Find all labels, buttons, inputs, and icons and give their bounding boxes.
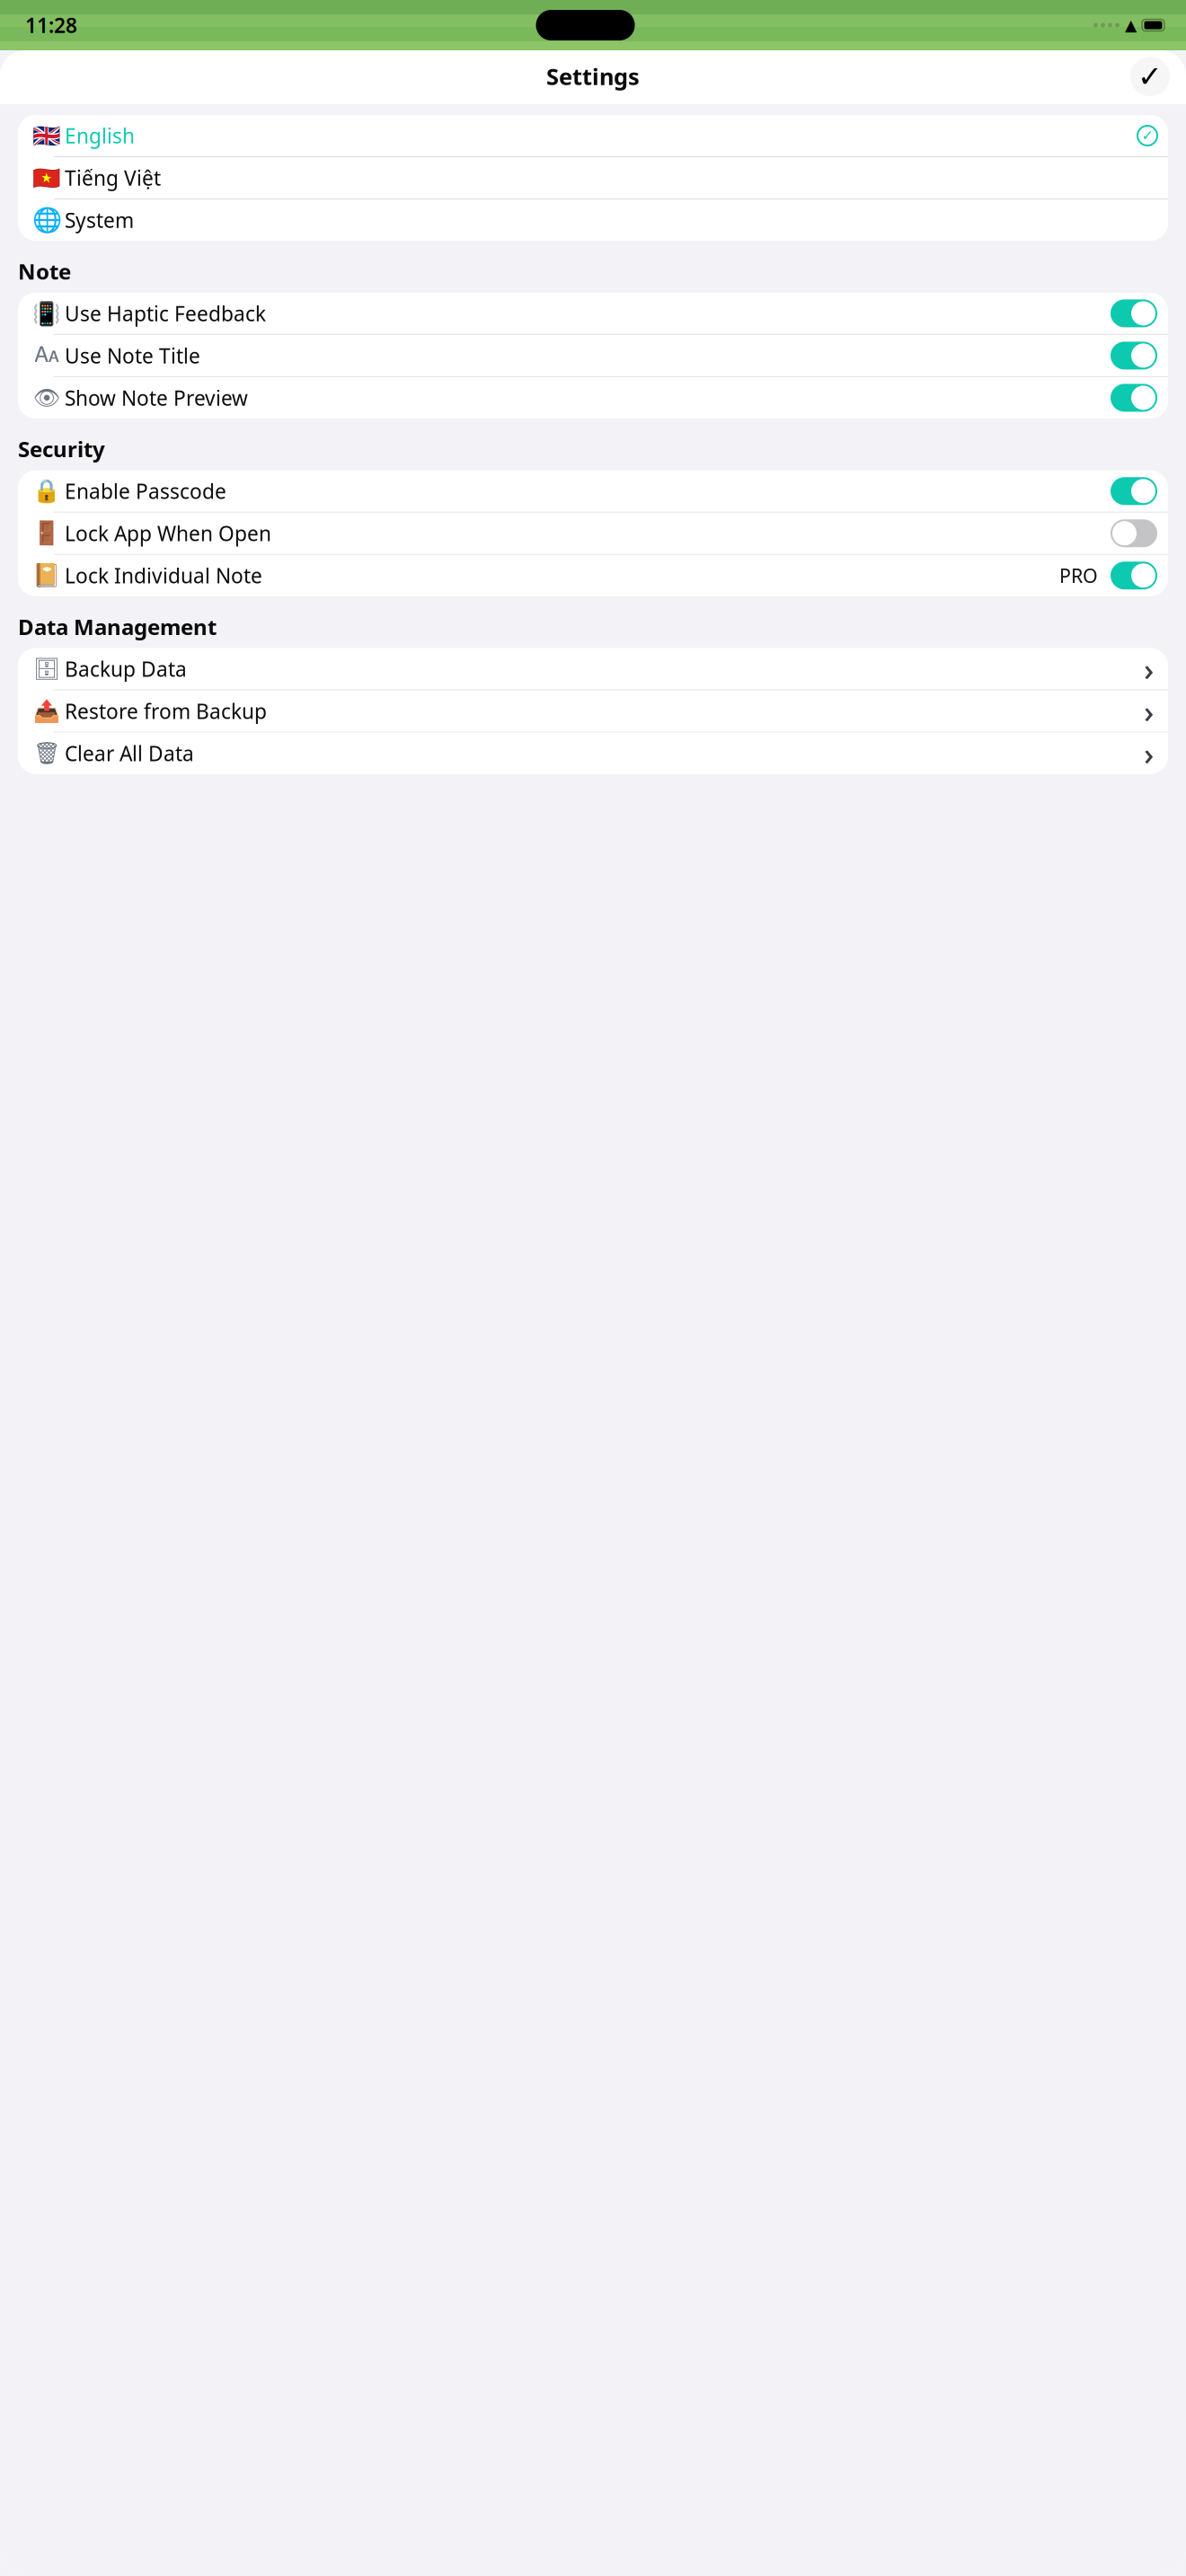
button[interactable]: 📤 [18,690,1168,732]
staticText: 🔒 [32,478,61,504]
staticText: PRO [1059,563,1098,588]
button[interactable]: 🗑 [18,733,1168,774]
staticText: Enable Passcode [65,478,226,505]
button[interactable]: 🚪 [18,513,1168,554]
staticText: 🇻🇳 [32,165,61,191]
button[interactable]: 🇬🇧 [18,115,1168,156]
button[interactable]: Done [1130,57,1170,96]
staticText: Lock App When Open [65,520,271,547]
staticText: 🚪 [32,520,61,546]
staticText: 🗛 [35,345,59,366]
staticText: ▲ [1125,16,1137,34]
button[interactable]: 🌐 [18,199,1168,241]
staticText: Settings [546,61,640,91]
staticText: › [1144,733,1154,774]
staticText: 🗑 [33,741,60,766]
staticText: Use Note Title [65,342,200,369]
staticText: Backup Data [65,655,187,682]
staticText: 🌐 [32,206,62,234]
button[interactable]: 🔒 [18,470,1168,512]
staticText: System [65,206,134,234]
button[interactable]: 📳 [18,293,1168,334]
staticText: Restore from Backup [65,698,267,725]
staticText: 📤 [33,699,60,723]
staticText: Security [18,435,105,463]
staticText: Use Haptic Feedback [65,300,266,327]
staticText: ✓ [1142,127,1153,144]
staticText: › [1144,690,1154,732]
button[interactable]: 🇻🇳 [18,157,1168,198]
staticText: Show Note Preview [65,384,248,411]
staticText: 🗄 [33,656,60,681]
button[interactable]: 🗛 [18,335,1168,376]
staticText: Clear All Data [65,740,194,767]
staticText: ✓ [1137,59,1163,93]
staticText: › [1144,648,1154,689]
staticText: 👁 [33,386,60,410]
staticText: English [65,122,135,149]
staticText: 📔 [32,563,61,588]
button[interactable]: 👁 [18,377,1168,418]
button[interactable]: 📔 [18,555,1168,596]
staticText: 11:28 [25,12,77,39]
staticText: Data Management [18,612,217,641]
staticText: Tiếng Việt [65,164,161,191]
staticText: Lock Individual Note [65,562,262,589]
staticText: Note [18,257,71,286]
staticText: 📳 [32,300,61,326]
staticText: 🇬🇧 [32,123,61,149]
button[interactable]: 🗄 [18,648,1168,689]
